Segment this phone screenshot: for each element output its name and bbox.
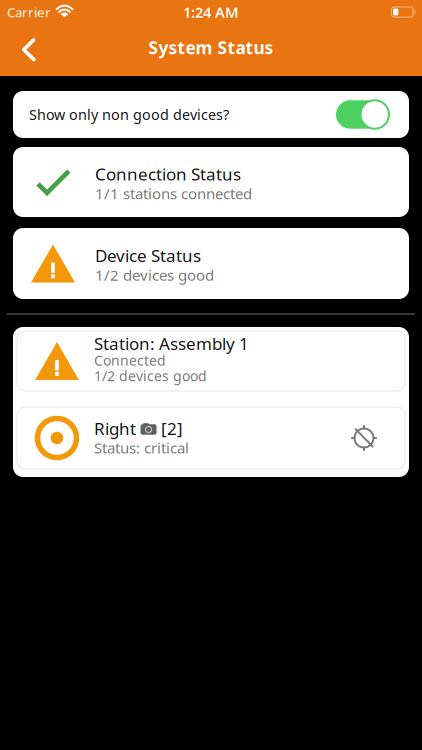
staticText: Carrier	[7, 3, 51, 21]
staticText: Station: Assembly 1	[94, 334, 249, 352]
staticText: Connection Status	[95, 163, 241, 184]
button[interactable]: Right	[17, 407, 405, 469]
button[interactable]: Station: Assembly 1	[17, 331, 405, 391]
button[interactable]: Show only non good devices?	[0, 91, 422, 138]
staticText: Status: critical	[94, 439, 189, 457]
staticText: Right	[94, 419, 136, 437]
staticText: Show only non good devices?	[29, 105, 229, 124]
staticText: 1/2 devices good	[95, 266, 214, 284]
staticText: System Status	[148, 36, 273, 59]
button[interactable]: Connection Status	[0, 147, 422, 217]
staticText: 1/1 stations connected	[95, 184, 252, 203]
button[interactable]: Device Status	[0, 228, 422, 299]
staticText: 1:24 AM	[183, 2, 239, 22]
button[interactable]: Back	[0, 24, 47, 76]
staticText: Connected 1/2 devices good	[94, 352, 207, 384]
staticText: Device Status	[95, 245, 201, 266]
staticText: [2]	[161, 419, 183, 437]
